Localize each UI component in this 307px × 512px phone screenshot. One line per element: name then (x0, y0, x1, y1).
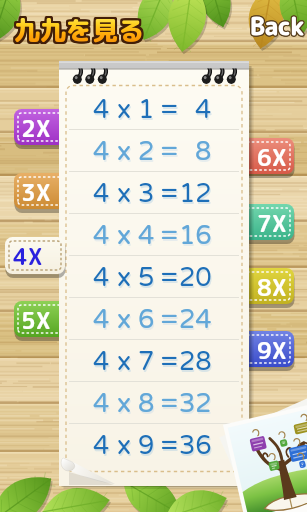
staticText: 1 (139, 96, 156, 127)
staticText: 5X (21, 304, 51, 336)
staticText: 7X (257, 207, 287, 239)
staticText: = (160, 136, 179, 167)
staticText: 九九を見る (16, 12, 147, 48)
staticText: 2 (138, 136, 155, 167)
staticText: x (117, 304, 132, 335)
button[interactable]: 7X (242, 204, 294, 243)
staticText: 九九を見る (16, 11, 147, 47)
staticText: 6 (139, 306, 156, 337)
staticText: 3X (21, 176, 51, 208)
staticText: 九九を見る (13, 14, 144, 50)
staticText: 20 (179, 262, 212, 293)
button[interactable]: 4 (59, 424, 249, 466)
button[interactable]: 6X (242, 138, 294, 177)
staticText: 8 (139, 390, 156, 421)
button[interactable]: 4 (59, 382, 249, 424)
staticText: 4 (93, 388, 110, 419)
staticText: 4 (94, 306, 111, 337)
staticText: x (117, 430, 132, 461)
staticText: 7 (139, 348, 156, 379)
staticText: Back (251, 10, 306, 43)
staticText: = (161, 222, 180, 253)
staticText: 九九を見る (13, 10, 144, 46)
staticText: 32 (180, 390, 213, 421)
staticText: 9 (139, 432, 156, 463)
staticText: 九九を見る (15, 10, 146, 46)
staticText: = (160, 388, 179, 419)
button[interactable]: 4 (59, 256, 249, 298)
staticText: x (117, 178, 132, 209)
staticText: Back (250, 9, 305, 42)
staticText: 九九を見る (14, 12, 145, 48)
staticText: x (117, 94, 132, 125)
staticText: x (118, 222, 133, 253)
staticText: 九九を見る (16, 14, 147, 50)
staticText: 7 (138, 346, 155, 377)
button[interactable]: 8X (242, 268, 294, 307)
button[interactable]: 5X (14, 301, 66, 340)
staticText: 5 (138, 262, 155, 293)
button[interactable]: 4X (5, 237, 65, 277)
staticText: Back (250, 8, 305, 41)
button[interactable]: 4 (59, 340, 249, 382)
staticText: 3 (139, 180, 156, 211)
staticText: 6 (138, 304, 155, 335)
staticText: Back (249, 9, 304, 42)
button[interactable]: 4 (59, 298, 249, 340)
staticText: x (117, 220, 132, 251)
button[interactable]: 4 (59, 88, 249, 130)
staticText: Back (250, 8, 305, 41)
staticText: 4 (94, 96, 111, 127)
staticText: = (161, 138, 180, 169)
staticText: 4 (138, 220, 155, 251)
staticText: x (117, 262, 132, 293)
staticText: 4 (93, 220, 110, 251)
staticText: 2 (139, 138, 156, 169)
staticText: 4X (13, 240, 43, 272)
staticText: = (160, 430, 179, 461)
staticText: 九九を見る (12, 10, 143, 46)
staticText: Back (250, 8, 305, 41)
button[interactable]: Back (250, 9, 305, 42)
staticText: 4 (94, 432, 111, 463)
button[interactable]: 4 (59, 130, 249, 172)
staticText: 九九を見る (14, 10, 145, 46)
staticText: = (160, 304, 179, 335)
staticText: 32 (179, 388, 212, 419)
staticText: Back (249, 10, 304, 43)
staticText: = (160, 94, 179, 125)
staticText: = (161, 264, 180, 295)
staticText: x (118, 432, 133, 463)
staticText: Back (250, 10, 305, 43)
staticText: 九九を見る (12, 12, 143, 48)
staticText: 九九を見る (12, 14, 143, 50)
staticText: = (161, 180, 180, 211)
staticText: 20 (180, 264, 213, 295)
staticText: x (117, 388, 132, 419)
staticText: 28 (180, 348, 213, 379)
staticText: 8 (196, 138, 213, 169)
staticText: 4 (93, 430, 110, 461)
staticText: 九九を見る (12, 11, 143, 47)
staticText: Back (251, 9, 306, 42)
button[interactable]: 3X (14, 173, 66, 212)
button[interactable]: 2X (14, 109, 66, 148)
button[interactable]: 9X (242, 331, 294, 370)
staticText: Back (249, 9, 304, 42)
staticText: 4 (93, 178, 110, 209)
staticText: x (117, 346, 132, 377)
staticText: 九九を見る (12, 13, 143, 49)
staticText: 4 (94, 138, 111, 169)
staticText: 4 (94, 222, 111, 253)
staticText: 12 (180, 180, 213, 211)
staticText: 4 (93, 346, 110, 377)
button[interactable]: 4 (59, 214, 249, 256)
staticText: x (118, 96, 133, 127)
button[interactable]: 4 (59, 172, 249, 214)
staticText: = (161, 390, 180, 421)
staticText: 6X (257, 141, 287, 173)
staticText: 9 (138, 430, 155, 461)
staticText: 九九を見る (16, 10, 147, 46)
staticText: 3 (138, 178, 155, 209)
staticText: x (117, 136, 132, 167)
